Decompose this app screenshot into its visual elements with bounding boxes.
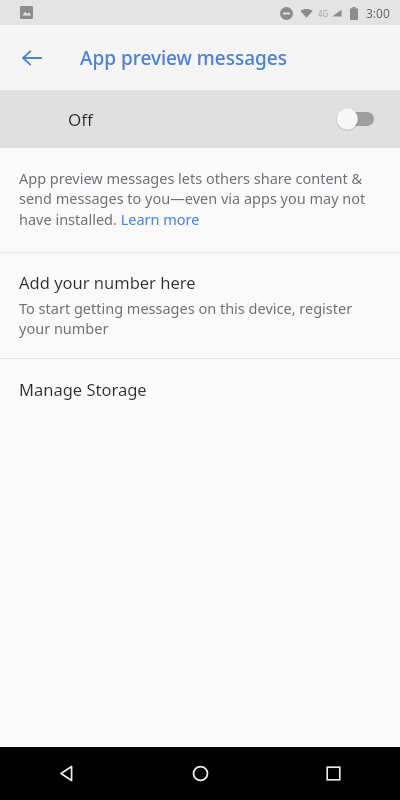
staticText: Manage Storage xyxy=(19,378,147,400)
staticText: Add your number here xyxy=(19,271,196,293)
button[interactable]: Back xyxy=(0,747,134,800)
staticText: To start getting messages on this device… xyxy=(19,298,382,338)
staticText: 4G xyxy=(318,8,329,19)
button[interactable]: Back xyxy=(10,36,54,80)
staticText: Off xyxy=(68,108,93,131)
button[interactable]: Recent apps xyxy=(267,747,400,800)
button[interactable]: Add your number here xyxy=(0,253,400,358)
button[interactable]: Home xyxy=(134,747,267,800)
staticText: 3:00 xyxy=(366,5,390,21)
staticText: App preview messages xyxy=(80,45,288,71)
button[interactable]: Off xyxy=(0,90,400,148)
staticText: App preview messages lets others share c… xyxy=(19,168,382,230)
button[interactable]: Manage Storage xyxy=(0,359,400,419)
